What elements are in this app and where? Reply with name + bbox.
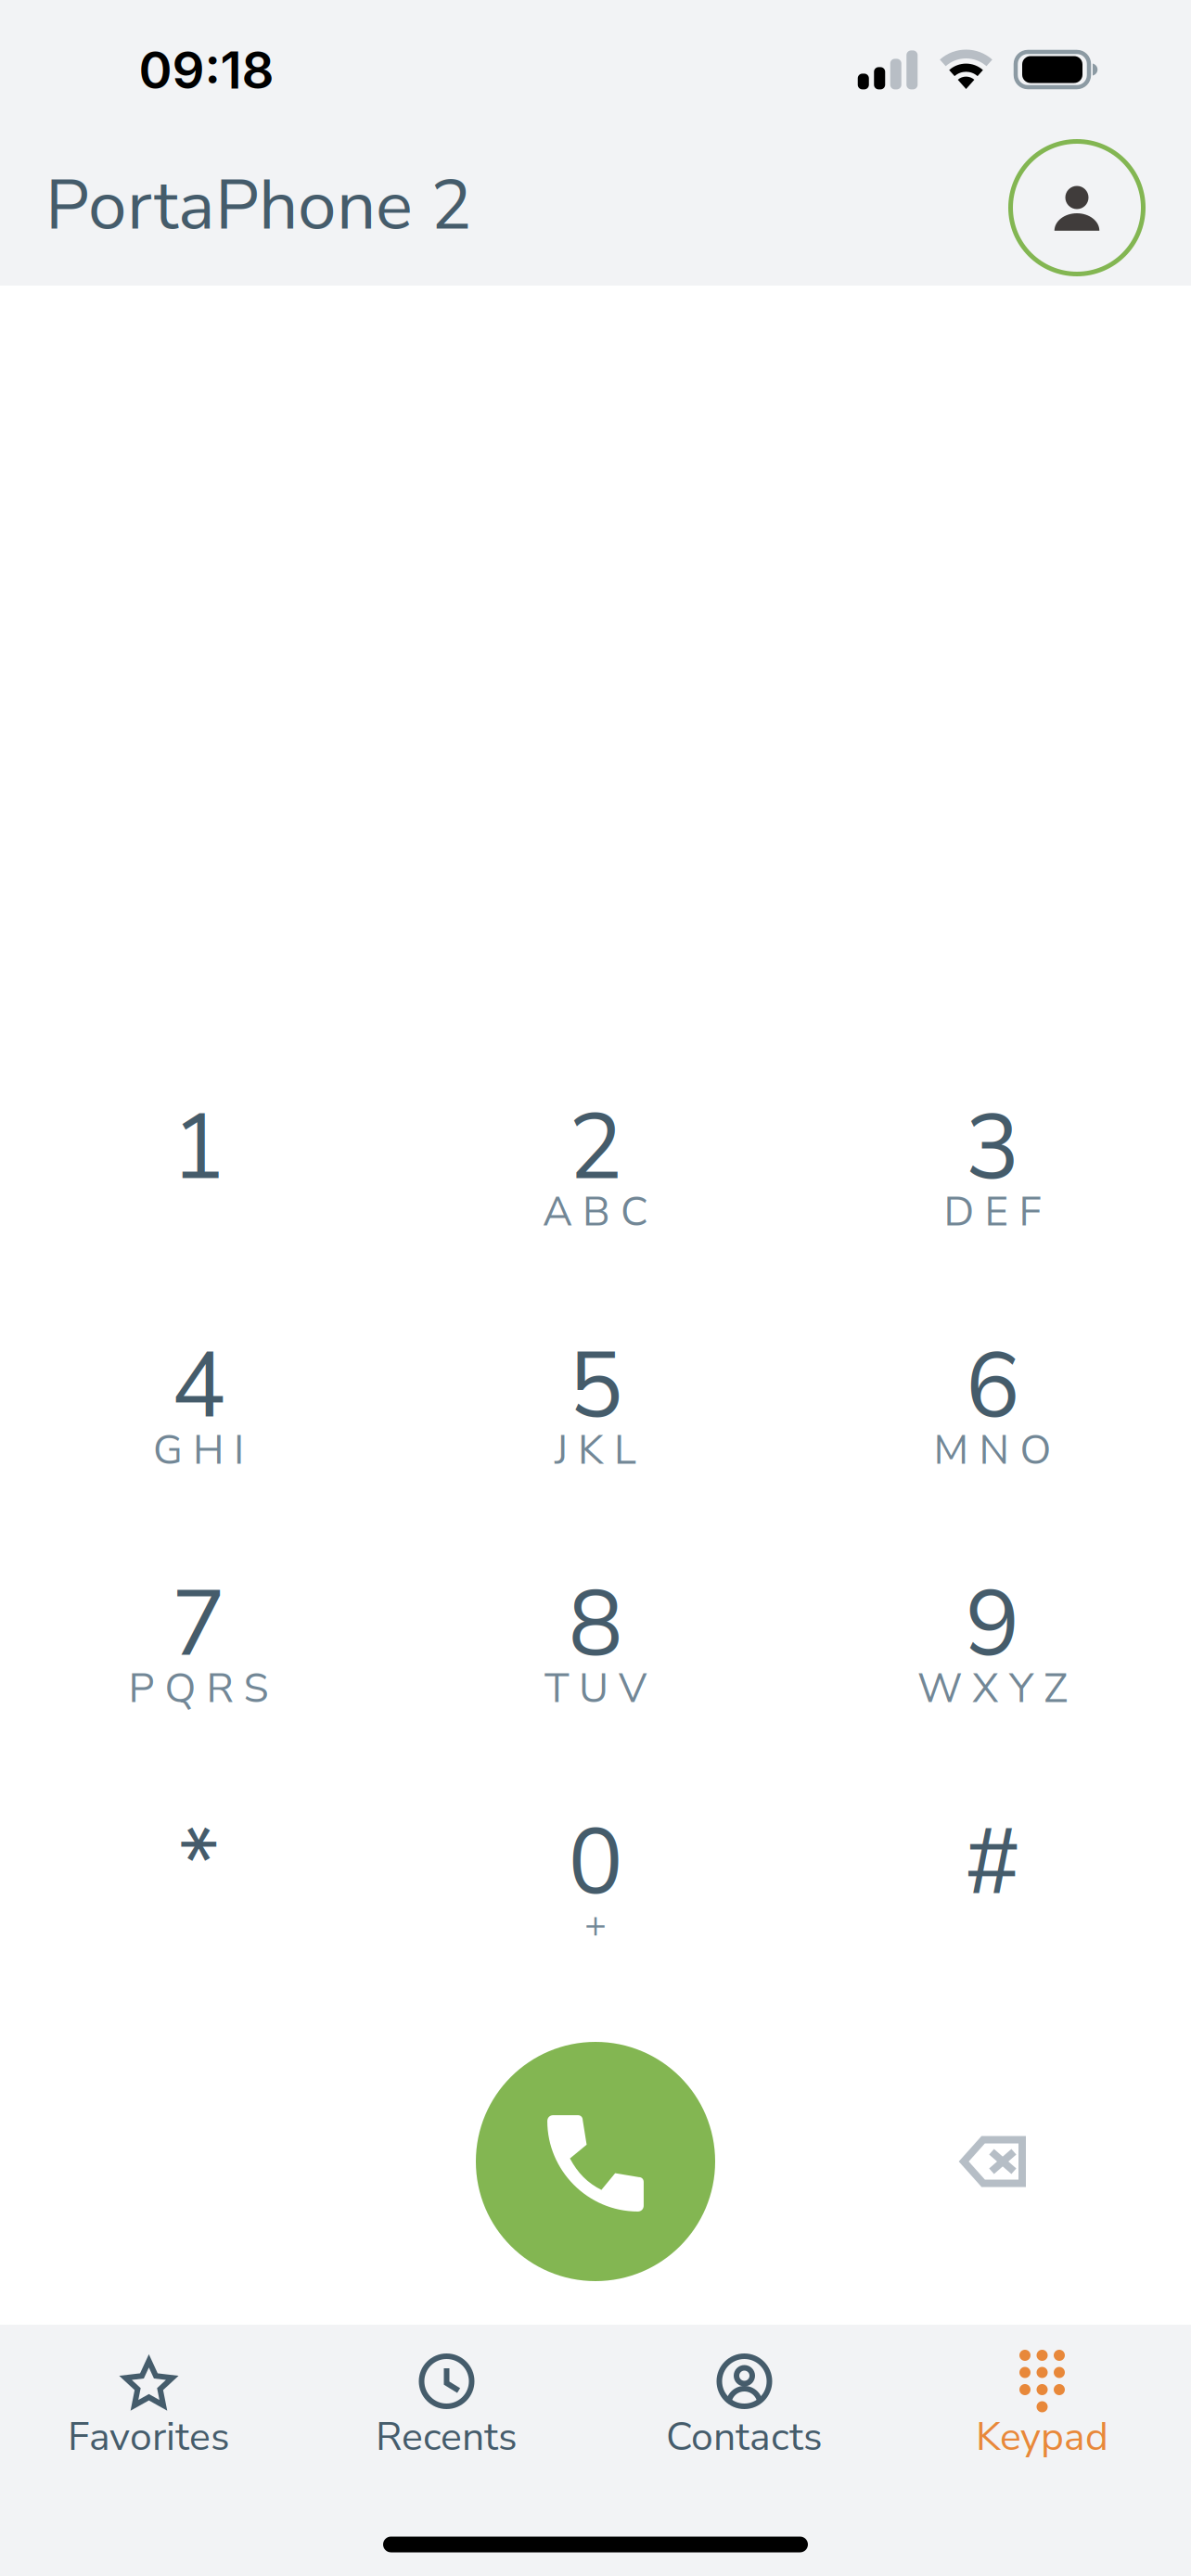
button[interactable]: 7: [99, 1524, 298, 1747]
staticText: PortaPhone 2: [45, 159, 472, 253]
staticText: T U V: [544, 1661, 647, 1716]
staticText: 6: [965, 1324, 1020, 1449]
staticText: Favorites: [68, 2410, 230, 2464]
button[interactable]: 2: [496, 1048, 695, 1270]
button[interactable]: 6: [893, 1286, 1092, 1509]
staticText: A B C: [543, 1184, 648, 1240]
staticText: Recents: [376, 2410, 518, 2464]
button[interactable]: Keypad: [968, 2325, 1117, 2488]
staticText: 3: [965, 1086, 1020, 1210]
button[interactable]: *: [99, 1763, 298, 1985]
button[interactable]: 8: [496, 1524, 695, 1747]
button[interactable]: Recents: [372, 2325, 521, 2488]
staticText: G H I: [153, 1422, 244, 1478]
staticText: D E F: [944, 1184, 1041, 1240]
staticText: Keypad: [976, 2410, 1108, 2464]
staticText: +: [584, 1900, 607, 1950]
staticText: 2: [568, 1086, 623, 1210]
staticText: Contacts: [666, 2410, 823, 2464]
button[interactable]: 4: [99, 1286, 298, 1509]
button[interactable]: Account: [1003, 134, 1151, 282]
staticText: W X Y Z: [917, 1661, 1068, 1716]
button[interactable]: 0: [496, 1763, 695, 1985]
button[interactable]: Favorites: [74, 2325, 223, 2488]
staticText: 4: [171, 1324, 226, 1449]
button[interactable]: Contacts: [670, 2325, 819, 2488]
staticText: 8: [568, 1562, 623, 1687]
staticText: M N O: [934, 1422, 1051, 1478]
staticText: 7: [171, 1562, 226, 1687]
staticText: 09:18: [139, 39, 274, 101]
staticText: J K L: [555, 1422, 636, 1478]
button[interactable]: 1: [99, 1048, 298, 1270]
staticText: 1: [171, 1086, 226, 1210]
button[interactable]: Delete: [918, 2087, 1067, 2236]
button[interactable]: 3: [893, 1048, 1092, 1270]
staticText: #: [965, 1801, 1020, 1925]
button[interactable]: #: [893, 1763, 1092, 1985]
button[interactable]: 9: [893, 1524, 1092, 1747]
button[interactable]: 5: [496, 1286, 695, 1509]
staticText: 9: [965, 1562, 1020, 1687]
staticText: *: [178, 1801, 219, 1925]
staticText: 0: [568, 1801, 623, 1925]
button[interactable]: Call: [476, 2042, 715, 2281]
staticText: P Q R S: [128, 1661, 269, 1716]
staticText: 5: [568, 1324, 623, 1449]
